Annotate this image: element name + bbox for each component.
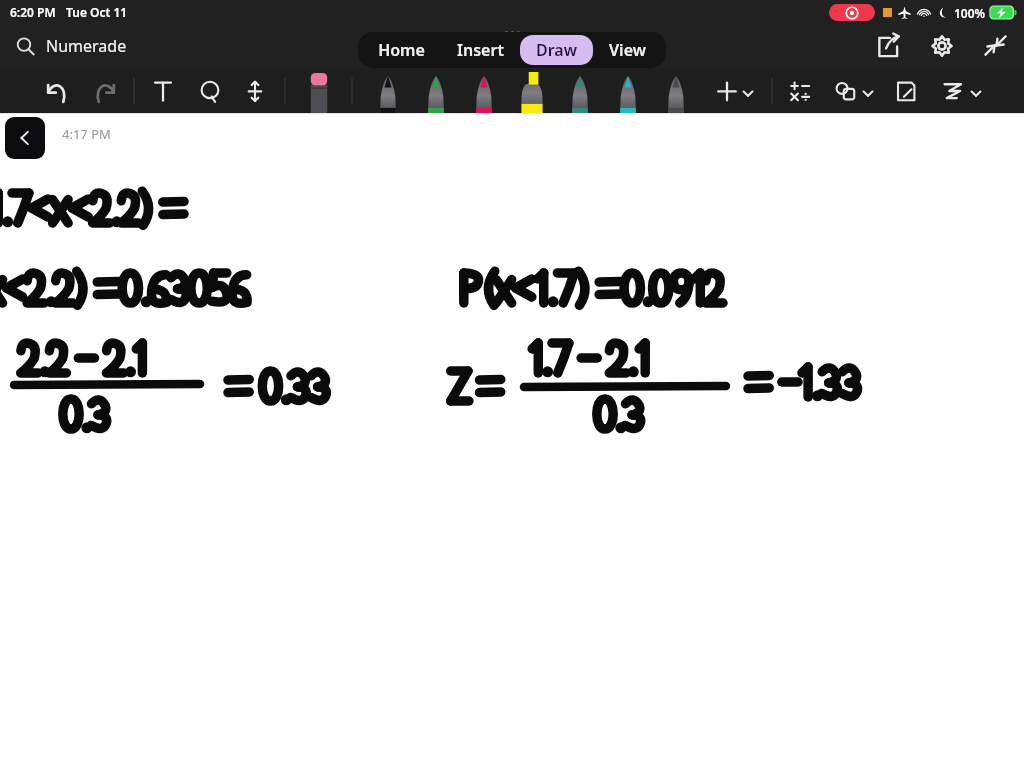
staticText: Numerade	[46, 35, 127, 57]
button[interactable]: Share	[872, 30, 904, 62]
button[interactable]: Back	[5, 117, 45, 159]
other: Search	[16, 37, 35, 56]
button[interactable]: Insert	[441, 35, 520, 65]
other: Recording	[829, 4, 875, 21]
staticText: 4:17 PM	[62, 125, 111, 143]
button[interactable]: Home	[362, 35, 441, 65]
button[interactable]: Collapse	[980, 30, 1012, 62]
staticText: Tue Oct 11	[66, 4, 128, 20]
staticText: Home	[378, 39, 425, 61]
staticText: Insert	[457, 39, 504, 61]
staticText: 100%	[954, 5, 986, 21]
staticText: Draw	[536, 39, 577, 61]
button[interactable]: Draw	[520, 35, 593, 65]
staticText: View	[609, 39, 646, 61]
button[interactable]: Search	[12, 31, 131, 61]
button[interactable]: View	[593, 35, 662, 65]
staticText: 6:20 PM	[10, 4, 56, 20]
button[interactable]: Settings	[926, 30, 958, 62]
